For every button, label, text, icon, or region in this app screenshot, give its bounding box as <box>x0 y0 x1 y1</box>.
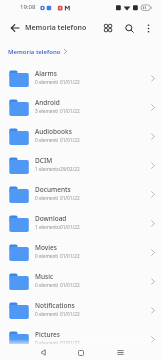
button[interactable]: Pictures <box>0 325 162 354</box>
button[interactable] <box>113 346 127 359</box>
button[interactable] <box>122 21 136 35</box>
button[interactable] <box>101 21 115 35</box>
staticText: 3 elementi <box>35 108 59 114</box>
button[interactable] <box>142 22 154 34</box>
staticText: 1 elemento <box>35 224 60 230</box>
button[interactable]: Documents <box>0 180 162 209</box>
button[interactable]: Memoria telefono <box>8 48 61 56</box>
button[interactable]: Android <box>0 93 162 122</box>
staticText: Pictures <box>35 330 60 339</box>
staticText: Alarms <box>35 69 57 78</box>
staticText: Download <box>35 214 67 223</box>
staticText: DCIM <box>35 156 53 165</box>
staticText: 01/01/22 <box>60 340 80 346</box>
staticText: 01/01/22 <box>60 108 80 114</box>
button[interactable]: Movies <box>0 238 162 267</box>
staticText: 0 elementi <box>35 340 59 346</box>
staticText: 01/01/22 <box>60 253 80 259</box>
staticText: 0 elementi <box>35 195 59 201</box>
staticText: 01/01/22 <box>60 79 80 85</box>
staticText: 0 elementi <box>35 253 59 259</box>
button[interactable]: Audiobooks <box>0 122 162 151</box>
staticText: 01/01/22 <box>60 282 80 288</box>
button[interactable]: Music <box>0 267 162 296</box>
button[interactable]: Alarms <box>0 64 162 93</box>
staticText: 01/01/22 <box>60 311 80 317</box>
staticText: 0 elementi <box>35 282 59 288</box>
button[interactable] <box>74 346 88 359</box>
staticText: 0 elementi <box>35 137 59 143</box>
staticText: 01/01/22 <box>60 137 80 143</box>
staticText: 01/01/22 <box>60 195 80 201</box>
staticText: 29/02/22 <box>60 166 80 172</box>
staticText: Memoria telefono <box>25 23 87 33</box>
staticText: 19:08 <box>20 3 36 11</box>
staticText: 0 elementi <box>35 79 59 85</box>
button[interactable] <box>36 346 50 359</box>
staticText: Audiobooks <box>35 127 72 136</box>
staticText: Notifications <box>35 301 75 310</box>
staticText: Movies <box>35 243 57 252</box>
staticText: 01/01/22 <box>60 224 80 230</box>
staticText: 1 elemento <box>35 166 60 172</box>
staticText: Documents <box>35 185 71 194</box>
button[interactable]: Download <box>0 209 162 238</box>
button[interactable]: DCIM <box>0 151 162 180</box>
staticText: 0 elementi <box>35 311 59 317</box>
button[interactable]: Notifications <box>0 296 162 325</box>
button[interactable] <box>8 21 22 35</box>
staticText: Android <box>35 98 60 107</box>
staticText: Music <box>35 272 54 281</box>
